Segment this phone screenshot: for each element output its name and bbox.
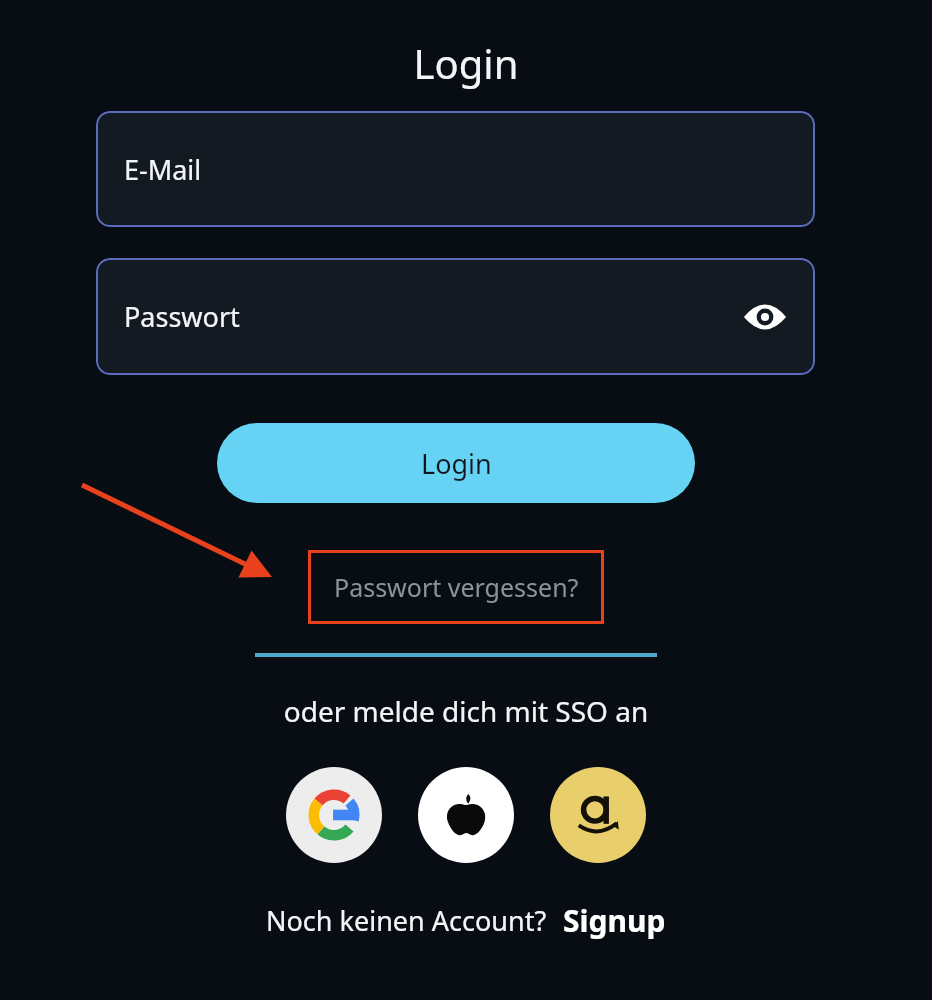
button[interactable]: Mit Google anmelden — [286, 767, 382, 863]
button[interactable]: Passwort — [96, 258, 815, 375]
staticText: Login — [0, 36, 932, 90]
button[interactable]: E-Mail — [96, 111, 815, 227]
staticText: Noch keinen Account? — [266, 902, 547, 939]
staticText: Login — [421, 445, 492, 482]
staticText: Signup — [563, 900, 666, 941]
button[interactable]: Mit Apple anmelden — [418, 767, 514, 863]
button[interactable]: Passwort anzeigen — [737, 289, 793, 345]
staticText: Passwort — [124, 298, 240, 335]
button[interactable]: Mit Amazon anmelden — [550, 767, 646, 863]
staticText: Passwort vergessen? — [334, 570, 579, 604]
button[interactable]: Login — [217, 423, 695, 503]
button[interactable]: Passwort vergessen? — [308, 550, 604, 624]
staticText: oder melde dich mit SSO an — [0, 692, 932, 730]
button[interactable]: Signup — [563, 900, 666, 941]
staticText: E-Mail — [124, 151, 202, 188]
